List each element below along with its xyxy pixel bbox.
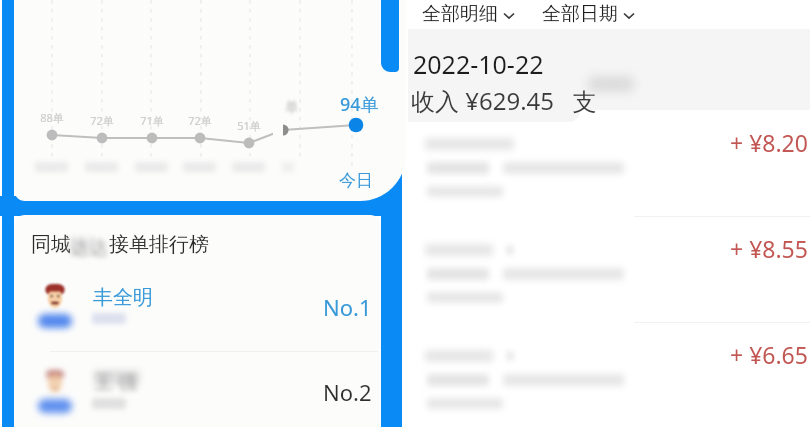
button[interactable]: 全部明细 [421,2,515,26]
button[interactable]: 今日 [339,170,373,191]
staticText: 接单排行榜 [109,232,209,257]
staticText: 今日 [339,170,373,191]
staticText: 72单 [179,113,221,128]
staticText: + ¥6.65 [730,339,808,370]
staticText: 单 [285,99,299,117]
button[interactable]: + ¥8.20 [408,120,810,226]
staticText: 收入 ¥629.45 支 [411,84,597,117]
staticText: 51单 [228,118,270,133]
staticText: 全部明细 [422,2,498,26]
staticText: 72单 [81,113,123,128]
staticText: + ¥8.55 [730,233,808,264]
staticText: 全部日期 [542,2,618,26]
staticText: + ¥8.20 [730,127,808,158]
other: Expand 全部明细 [504,11,514,21]
staticText: 王 强 [94,369,137,395]
staticText: 达达 [70,236,108,260]
button[interactable]: + ¥8.55 [408,226,810,332]
staticText: 71单 [131,113,173,128]
staticText: 88单 [31,110,73,125]
button[interactable]: 丰全明 [14,267,381,352]
button[interactable]: + ¥6.65 [408,332,810,427]
button[interactable]: 王 强 [14,352,381,427]
staticText: 2022-10-22 [413,47,544,81]
staticText: 94单 [340,92,379,117]
other: Expand 全部日期 [624,11,634,21]
staticText: 丰全明 [93,285,153,310]
staticText: No.2 [323,377,372,407]
button[interactable]: 同城 [14,215,381,267]
button[interactable]: 全部日期 [541,2,635,26]
staticText: 同城 [31,232,71,257]
staticText: No.1 [323,292,372,322]
